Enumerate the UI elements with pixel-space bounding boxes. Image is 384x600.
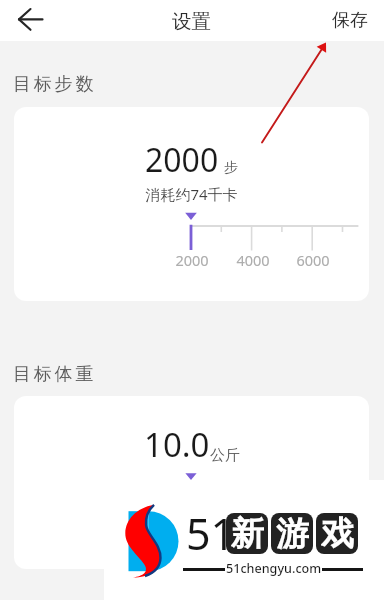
staticText: 目标步数 [13,73,97,96]
button[interactable]: 保存 [316,3,384,38]
staticText: 消耗约74千卡 [14,184,369,204]
button[interactable]: Back [8,0,52,41]
staticText: 保存 [332,9,368,32]
staticText: 公斤 [210,446,240,465]
staticText: 6000 [293,250,333,270]
staticText: 设置 [172,9,211,34]
staticText: 戏 [321,513,354,554]
staticText: 新 [231,513,264,554]
staticText: 游 [276,513,309,554]
button[interactable]: 10.0 [14,396,369,569]
button[interactable]: 2000 [14,107,369,301]
staticText: 目标体重 [13,363,97,386]
staticText: 2000 [172,250,212,270]
staticText: 步 [224,159,238,177]
staticText: 2000 [145,138,219,182]
staticText: 10.0 [144,422,210,467]
staticText: 51 [186,504,236,563]
staticText: 51chengyu.com [226,560,322,577]
staticText: 4000 [233,250,273,270]
